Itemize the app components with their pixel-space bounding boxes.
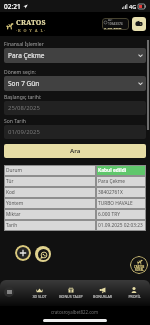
button[interactable]: PROFİL [118,280,150,306]
staticText: Miktar [6,211,21,218]
staticText: 3D SLOT [32,294,47,299]
staticText: 02:21 [4,2,21,11]
staticText: ID: 10643374 [108,18,127,26]
staticText: ·R O Y A L· [16,28,46,33]
staticText: 01/09/2025 [8,128,40,136]
staticText: Finansal İşlemler [4,41,44,48]
button[interactable]: 25/08/2025 [4,101,146,115]
staticText: 0,00 TRY [104,27,122,30]
button[interactable]: Son 7 Gün [4,76,146,91]
staticText: Son Tarih [4,118,26,125]
button[interactable]: CRATOS [5,18,46,33]
staticText: Tür [6,178,14,185]
staticText: 6.000 TRY [98,211,120,218]
button[interactable]: Menu [0,280,24,306]
button[interactable]: BONUS TALEP [55,280,86,306]
staticText: Ara [70,147,81,155]
button[interactable]: ID: 10643374 [102,18,129,30]
staticText: ROYAL [135,268,144,271]
staticText: Kabul edildi [98,167,127,174]
staticText: Tarih [6,222,18,229]
staticText: Para Çekme [8,51,45,60]
button[interactable]: Add [15,245,31,261]
staticText: Başlangıç tarihi: [4,94,42,101]
staticText: Dönem seçin: [4,69,36,76]
staticText: BONUSLAR [93,294,112,299]
button[interactable]: Cratos Royal [130,256,148,274]
staticText: 4G [129,3,137,10]
staticText: cratosroyalbet822.com [51,309,99,315]
staticText: Durum [6,167,22,174]
staticText: Yöntem [6,200,24,207]
staticText: BONUS TALEP [59,294,83,299]
staticText: Kod [6,189,15,196]
button[interactable]: Ara [4,144,146,158]
staticText: Para Çekme [98,178,125,185]
button[interactable]: BONUSLAR [86,280,118,306]
button[interactable]: 01/09/2025 [4,125,146,139]
button[interactable]: 3D SLOT [24,280,55,306]
staticText: Son 7 Gün [8,79,40,88]
button[interactable]: Para Çekme [4,48,146,63]
staticText: 01.09.2025 02:03:23 [98,222,143,229]
button[interactable]: Wallet [132,17,146,31]
staticText: CRATOS [16,18,46,28]
button[interactable]: WhatsApp [35,246,51,262]
staticText: TURBO HAVALE [98,200,133,207]
staticText: 25/08/2025 [8,104,40,112]
staticText: PROFİL [128,294,141,299]
staticText: 38402761X [98,189,123,196]
staticText: CRATOS [134,265,145,268]
